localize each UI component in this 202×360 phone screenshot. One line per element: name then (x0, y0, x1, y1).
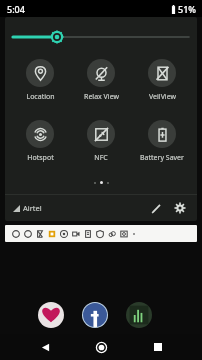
button[interactable]: Music (126, 302, 152, 328)
staticText: 51% (178, 3, 196, 15)
staticText: Hotspot (27, 153, 54, 163)
staticText: 5:04 (7, 3, 25, 15)
staticText: Airtel (23, 203, 42, 213)
button[interactable]: Location (10, 57, 70, 104)
button[interactable]: Home (89, 335, 113, 359)
button[interactable]: Hotspot (10, 118, 70, 165)
staticText: VeilView (149, 92, 176, 102)
button[interactable]: Back (33, 335, 57, 359)
button[interactable]: Battery Saver (132, 118, 192, 165)
button[interactable]: NFC (71, 118, 131, 165)
button[interactable]: Health (38, 302, 64, 328)
button[interactable]: Settings (171, 199, 189, 217)
staticText: Location (26, 92, 55, 102)
button[interactable] (5, 225, 197, 242)
button[interactable]: Edit tiles (147, 199, 165, 217)
staticText: NFC (94, 153, 108, 163)
button[interactable]: Recents (146, 335, 170, 359)
button[interactable]: VeilView (132, 57, 192, 104)
staticText: Battery Saver (140, 153, 184, 163)
button[interactable]: Relax View (71, 57, 131, 104)
button[interactable]: Facebook (82, 302, 108, 328)
staticText: Relax View (84, 92, 119, 102)
button[interactable]: Brightness (13, 29, 189, 45)
